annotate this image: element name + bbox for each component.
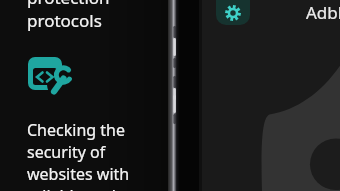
staticText: Adblock <box>306 1 340 24</box>
staticText: security of <box>27 141 106 163</box>
staticText: protection <box>27 0 110 9</box>
staticText: reliable tools <box>27 185 124 191</box>
staticText: websites with <box>27 163 130 185</box>
button[interactable]: Website security tools <box>27 55 75 103</box>
staticText: Checking the <box>27 119 125 141</box>
button[interactable]: Settings <box>216 0 250 25</box>
staticText: protocols <box>27 9 102 32</box>
